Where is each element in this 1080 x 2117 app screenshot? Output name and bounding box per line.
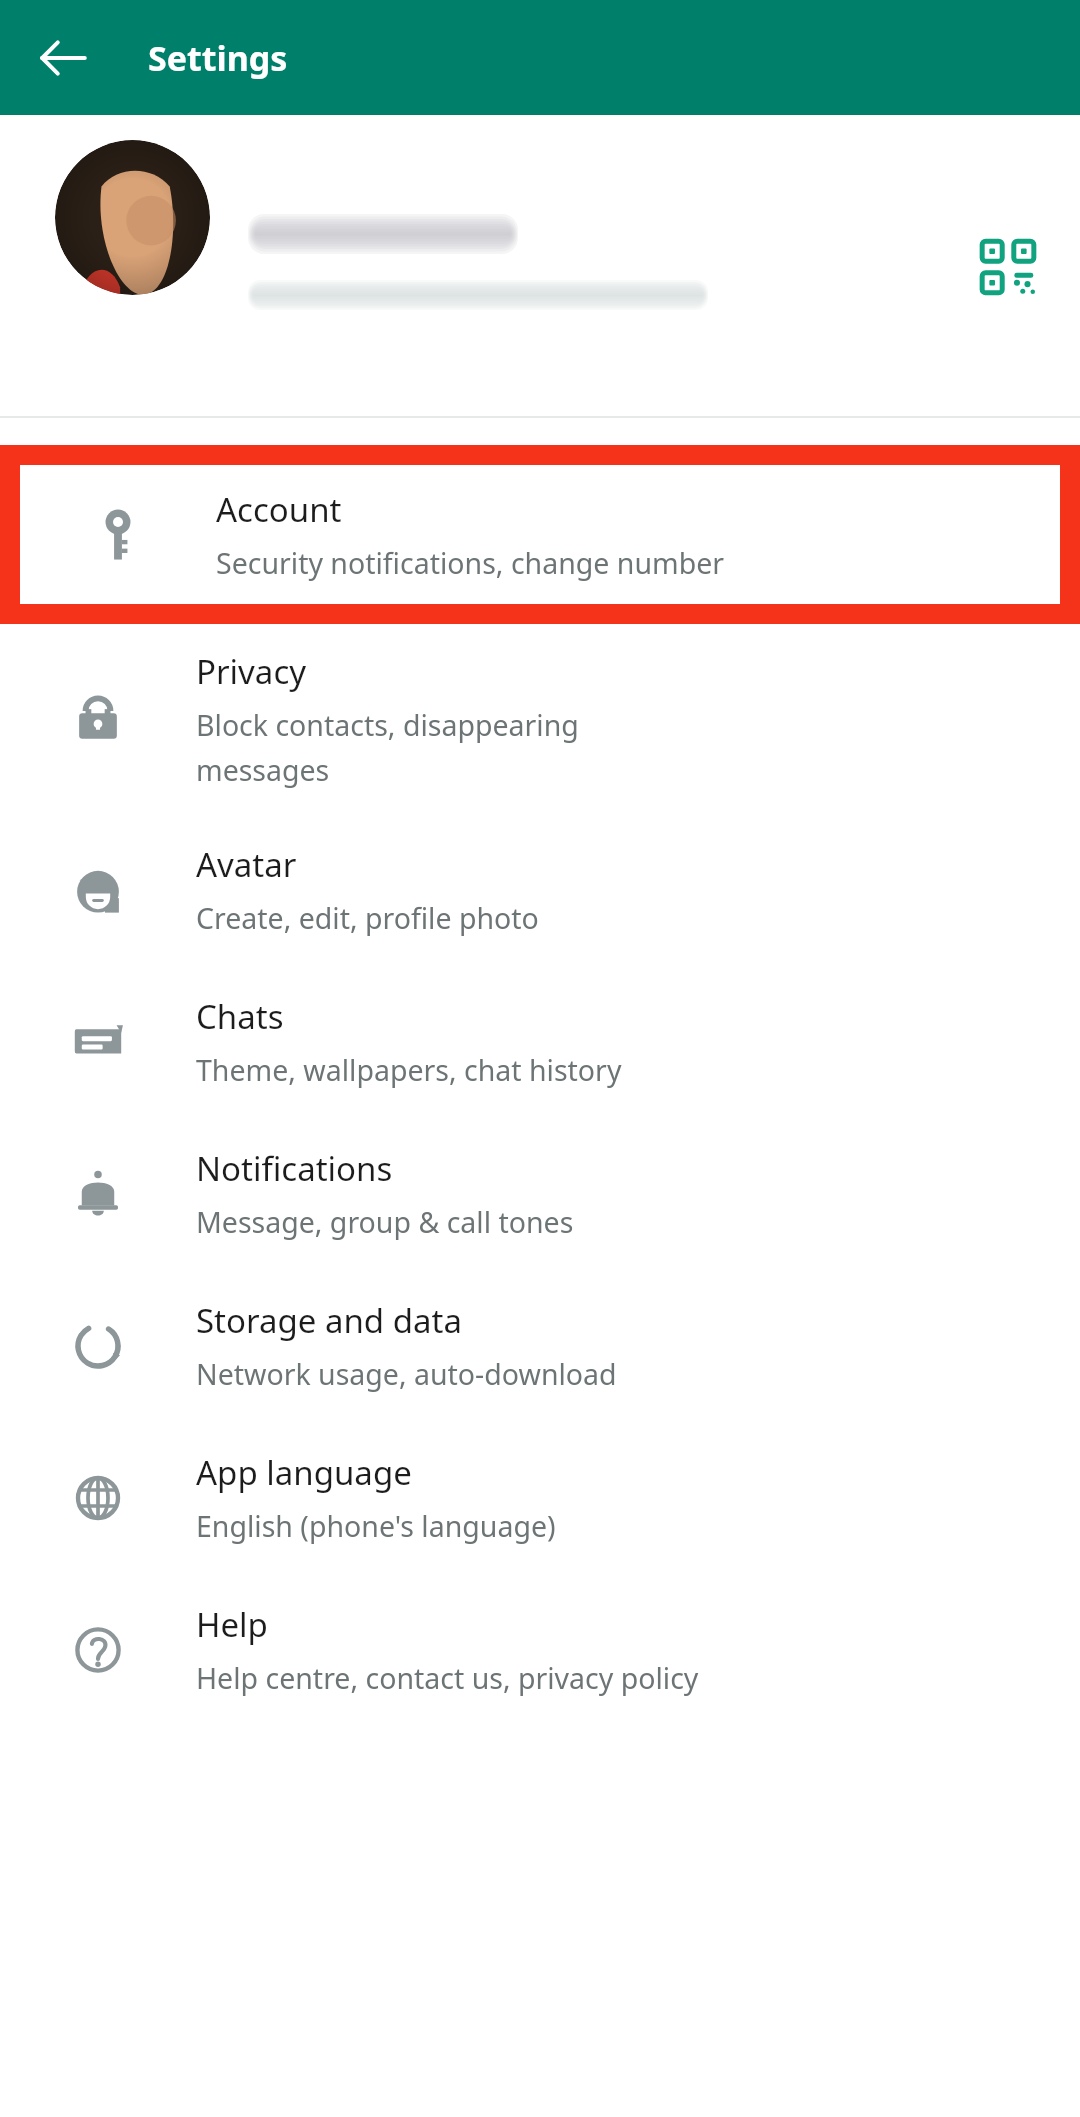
staticText: Message, group & call tones (196, 1203, 574, 1242)
staticText: Network usage, auto-download (196, 1355, 617, 1394)
button[interactable]: QR code (962, 221, 1054, 313)
staticText: Notifications (196, 1146, 393, 1191)
staticText: Block contacts, disappearing messages (196, 706, 596, 789)
staticText: Storage and data (196, 1298, 462, 1343)
staticText: App language (196, 1450, 412, 1495)
button[interactable]: QR code (0, 115, 1080, 418)
button[interactable]: App language (0, 1422, 1080, 1574)
staticText: Security notifications, change number (216, 544, 725, 583)
staticText: Create, edit, profile photo (196, 899, 539, 938)
staticText: Help (196, 1602, 268, 1647)
staticText: Theme, wallpapers, chat history (196, 1051, 622, 1090)
button[interactable]: Notifications (0, 1118, 1080, 1270)
button[interactable]: Avatar (0, 814, 1080, 966)
staticText: Help centre, contact us, privacy policy (196, 1659, 699, 1698)
button[interactable]: Back (30, 25, 96, 91)
staticText: Privacy (196, 649, 307, 694)
staticText: Chats (196, 994, 284, 1039)
staticText: Avatar (196, 842, 297, 887)
button[interactable]: Account (20, 465, 1060, 604)
button[interactable]: Chats (0, 966, 1080, 1118)
staticText: Settings (148, 35, 288, 81)
staticText: English (phone's language) (196, 1507, 556, 1546)
button[interactable]: Storage and data (0, 1270, 1080, 1422)
button[interactable]: Privacy (0, 624, 1080, 814)
staticText: Account (216, 487, 342, 532)
button[interactable]: Help (0, 1574, 1080, 1726)
